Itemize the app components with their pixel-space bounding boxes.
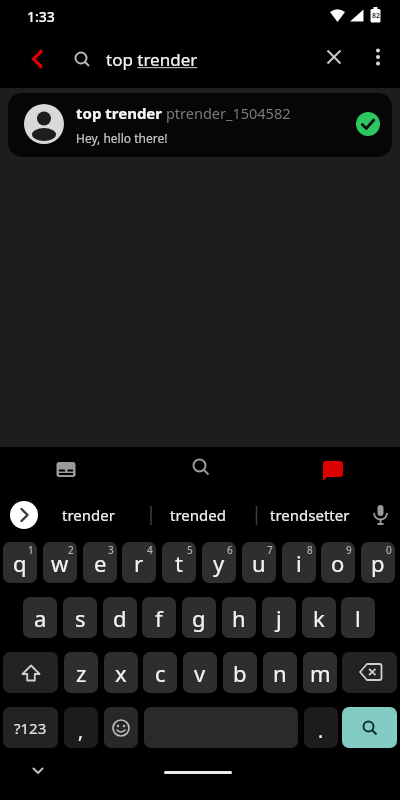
button[interactable] — [3, 652, 58, 693]
button[interactable]: i — [282, 542, 316, 583]
button[interactable]: , — [64, 707, 98, 748]
staticText: j — [276, 603, 282, 633]
staticText: 1:33 — [27, 7, 55, 26]
staticText: y — [213, 548, 225, 578]
button[interactable]: q — [3, 542, 37, 583]
button[interactable]: r — [122, 542, 156, 583]
button[interactable]: k — [302, 597, 336, 638]
button[interactable] — [184, 450, 216, 482]
button[interactable]: l — [341, 597, 375, 638]
staticText: u — [252, 548, 266, 578]
staticText: 6 — [227, 543, 233, 557]
staticText: 1 — [28, 543, 34, 557]
button[interactable]: f — [142, 597, 176, 638]
button[interactable] — [316, 450, 348, 482]
button[interactable]: trendsetter — [258, 501, 362, 529]
staticText: 82 — [372, 11, 381, 21]
button[interactable]: z — [64, 652, 98, 693]
button[interactable]: s — [63, 597, 97, 638]
staticText: i — [296, 548, 302, 578]
button[interactable]: g — [182, 597, 216, 638]
staticText: trended — [170, 505, 226, 525]
staticText: r — [134, 548, 144, 578]
staticText: k — [313, 603, 325, 633]
button[interactable]: u — [242, 542, 276, 583]
button[interactable]: o — [321, 542, 355, 583]
staticText: l — [355, 603, 361, 633]
button[interactable]: d — [103, 597, 137, 638]
staticText: s — [75, 603, 86, 633]
button[interactable]: y — [202, 542, 236, 583]
staticText: z — [76, 658, 87, 688]
staticText: e — [94, 548, 107, 578]
button[interactable]: top trender ptrender_1504582 — [8, 93, 392, 157]
staticText: g — [192, 603, 206, 633]
staticText: b — [233, 658, 247, 688]
staticText: w — [51, 548, 69, 578]
button[interactable]: b — [223, 652, 257, 693]
staticText: m — [310, 658, 331, 688]
button[interactable]: c — [143, 652, 177, 693]
button[interactable] — [364, 43, 392, 71]
staticText: 2 — [68, 543, 74, 557]
button[interactable]: top trender — [106, 44, 256, 74]
button[interactable]: t — [162, 542, 196, 583]
staticText: 0 — [386, 543, 392, 557]
staticText: . — [318, 718, 324, 744]
button[interactable]: h — [222, 597, 256, 638]
button[interactable]: v — [183, 652, 217, 693]
button[interactable] — [342, 652, 397, 693]
staticText: trendsetter — [270, 505, 350, 525]
button[interactable]: e — [83, 542, 117, 583]
staticText: t — [175, 548, 183, 578]
button[interactable]: x — [104, 652, 138, 693]
staticText: o — [331, 548, 345, 578]
staticText: 5 — [187, 543, 193, 557]
staticText: trender — [62, 505, 115, 525]
staticText: 4 — [147, 543, 153, 557]
button[interactable] — [24, 758, 52, 784]
button[interactable] — [320, 43, 348, 71]
staticText: 8 — [307, 543, 313, 557]
staticText: 3 — [108, 543, 114, 557]
staticText: ?123 — [14, 718, 47, 738]
button[interactable] — [22, 44, 52, 74]
button[interactable]: ?123 — [3, 707, 58, 748]
button[interactable]: trender — [36, 501, 140, 529]
button[interactable]: j — [262, 597, 296, 638]
button[interactable]: a — [23, 597, 57, 638]
staticText: v — [194, 658, 206, 688]
button[interactable] — [366, 501, 396, 529]
staticText: q — [13, 548, 27, 578]
staticText: top trender — [106, 48, 198, 71]
button[interactable]: trended — [146, 501, 250, 529]
button[interactable] — [104, 707, 138, 748]
staticText: n — [273, 658, 287, 688]
staticText: f — [155, 603, 163, 633]
staticText: x — [115, 658, 127, 688]
staticText: 9 — [346, 543, 352, 557]
button[interactable]: p — [361, 542, 395, 583]
staticText: , — [78, 718, 84, 744]
button[interactable] — [50, 453, 82, 485]
button[interactable]: n — [263, 652, 297, 693]
staticText: 7 — [267, 543, 273, 557]
staticText: Hey, hello there! — [76, 130, 168, 146]
staticText: c — [155, 658, 166, 688]
staticText: d — [113, 603, 127, 633]
button[interactable]: m — [303, 652, 337, 693]
button[interactable] — [144, 707, 298, 748]
button[interactable]: w — [43, 542, 77, 583]
button[interactable] — [342, 707, 397, 748]
staticText: top trender ptrender_1504582 — [76, 103, 291, 123]
staticText: p — [371, 548, 385, 578]
button[interactable] — [10, 501, 38, 529]
button[interactable]: . — [304, 707, 338, 748]
staticText: a — [34, 603, 47, 633]
staticText: h — [232, 603, 246, 633]
